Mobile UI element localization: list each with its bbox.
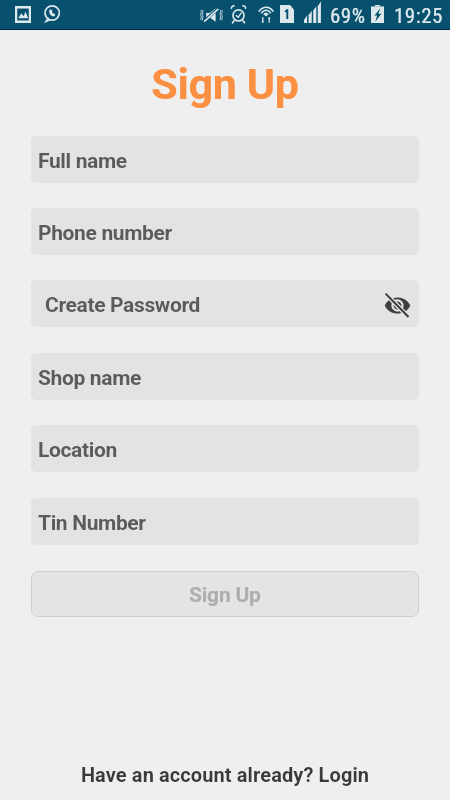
button[interactable]: Show password <box>382 289 412 319</box>
staticText: Shop name <box>38 366 141 391</box>
button[interactable]: Tin Number <box>31 498 419 545</box>
staticText: 69% <box>330 4 366 29</box>
button[interactable]: Have an account already? Login <box>0 763 450 786</box>
staticText: Create Password <box>45 293 201 318</box>
staticText: Sign Up <box>189 583 261 608</box>
staticText: Sign Up <box>0 59 450 109</box>
staticText: Tin Number <box>38 511 146 536</box>
button[interactable]: Sign Up <box>31 571 419 617</box>
staticText: Phone number <box>38 221 172 246</box>
staticText: 19:25 <box>394 4 443 29</box>
button[interactable]: Full name <box>31 136 419 183</box>
button[interactable]: Location <box>31 425 419 472</box>
staticText: Full name <box>38 149 127 174</box>
button[interactable]: Phone number <box>31 208 419 255</box>
button[interactable]: Shop name <box>31 353 419 400</box>
staticText: Location <box>38 438 117 463</box>
button[interactable]: Create Password <box>31 280 419 327</box>
